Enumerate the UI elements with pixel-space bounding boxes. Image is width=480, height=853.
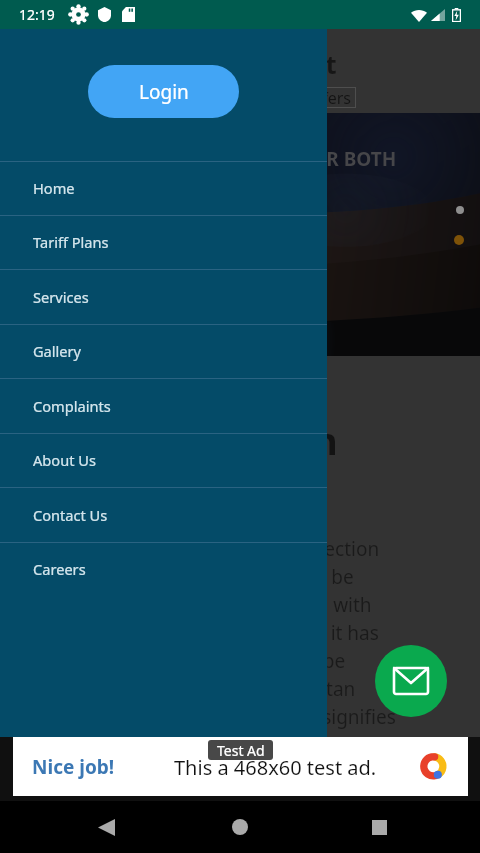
button[interactable]: Services [0, 269, 327, 324]
staticText: Login [139, 79, 189, 105]
staticText: Nice job! [32, 754, 115, 780]
button[interactable]: Contact Us [0, 487, 327, 542]
staticText: smartphones it has [207, 620, 379, 646]
staticText: Tariff Plans [33, 232, 109, 252]
staticText: View Offers [265, 87, 351, 108]
button[interactable]: Tariff Plans [0, 215, 327, 269]
staticText: Contact Us [33, 505, 108, 525]
staticText: Test Ad [217, 741, 265, 760]
staticText: of devices which can be [144, 564, 354, 590]
button[interactable]: Careers [0, 542, 327, 596]
staticText: Home [33, 178, 75, 198]
button[interactable]: Gallery [0, 324, 327, 378]
staticText: Services [33, 287, 89, 307]
button[interactable]: Login [88, 65, 239, 118]
staticText: Introduction [97, 414, 338, 466]
staticText: company that signifies [194, 704, 396, 730]
button[interactable]: Complaints [0, 378, 327, 433]
staticText: Zong internet device is a collection [71, 536, 380, 562]
staticText: connected with [235, 592, 372, 618]
button[interactable]: Compose email [375, 645, 447, 717]
staticText: Zong Internet [163, 47, 337, 81]
button[interactable]: Back [98, 819, 115, 836]
staticText: About Us [33, 450, 96, 470]
button[interactable]: View Offers [265, 87, 351, 108]
staticText: Gallery [33, 341, 82, 361]
staticText: Complaints [33, 396, 111, 416]
button[interactable]: About Us [0, 433, 327, 487]
staticText: 12:19 [19, 5, 55, 24]
staticText: This a 468x60 test ad. [174, 754, 377, 781]
staticText: CHOOSE ANY OR BOTH [183, 146, 397, 172]
staticText: Careers [33, 559, 86, 579]
staticText: used in Pakistan [210, 676, 356, 702]
staticText: the prototype [223, 648, 346, 674]
button[interactable]: Home [232, 819, 248, 835]
button[interactable]: Home [0, 161, 327, 215]
